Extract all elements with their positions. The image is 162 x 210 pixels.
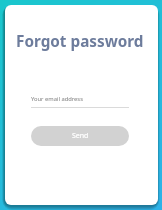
button[interactable]: Send [31,126,129,146]
staticText: Send [72,131,89,141]
staticText: Forgot password [16,31,144,52]
staticText: Your email address [31,95,83,103]
